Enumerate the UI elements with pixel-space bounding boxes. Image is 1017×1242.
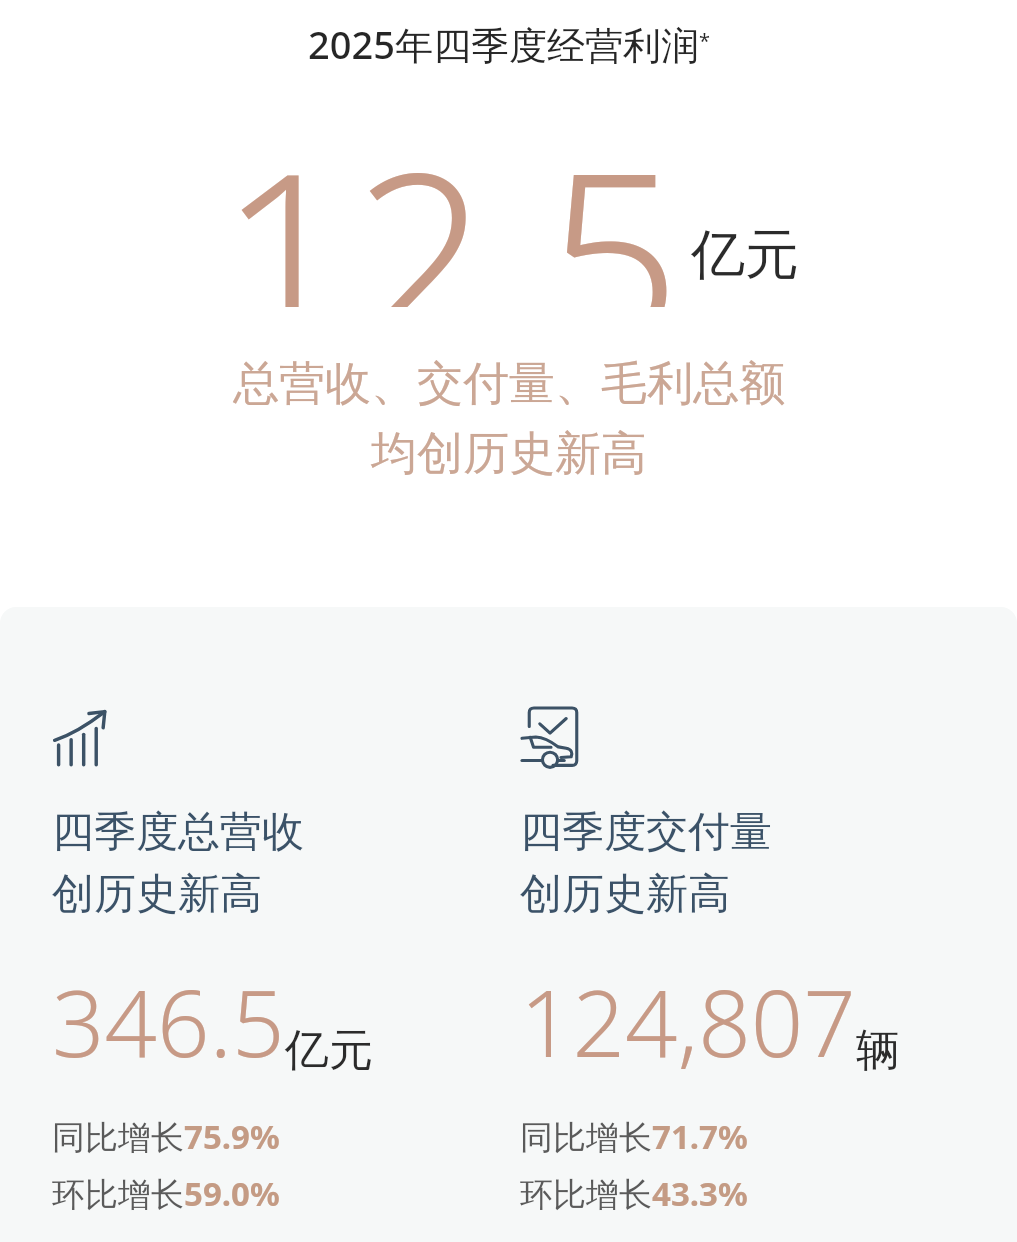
staticText: 亿元 — [691, 221, 799, 289]
staticText: 346.5 — [52, 959, 285, 1084]
other: Revenue growth chart — [52, 704, 118, 770]
button[interactable]: Revenue growth chart — [52, 704, 508, 1242]
staticText: 2025年四季度经营利润* — [308, 18, 710, 70]
staticText: 创历史新高 — [52, 868, 262, 921]
staticText: 124,807 — [520, 959, 856, 1084]
staticText: 四季度交付量 — [520, 806, 772, 859]
staticText: 环比增长43.3% — [520, 1171, 748, 1216]
staticText: 亿元 — [285, 1023, 373, 1078]
other: Vehicle deliveries — [520, 704, 586, 770]
staticText: 均创历史新高 — [371, 425, 647, 483]
staticText: 12.5 — [219, 92, 681, 307]
staticText: 同比增长75.9% — [52, 1114, 280, 1159]
staticText: 环比增长59.0% — [52, 1171, 280, 1216]
staticText: 创历史新高 — [520, 868, 730, 921]
staticText: 同比增长71.7% — [520, 1114, 748, 1159]
staticText: 四季度总营收 — [52, 806, 304, 859]
staticText: 总营收、交付量、毛利总额 — [233, 355, 785, 413]
staticText: 辆 — [856, 1023, 900, 1078]
button[interactable]: Vehicle deliveries — [520, 704, 1017, 1242]
